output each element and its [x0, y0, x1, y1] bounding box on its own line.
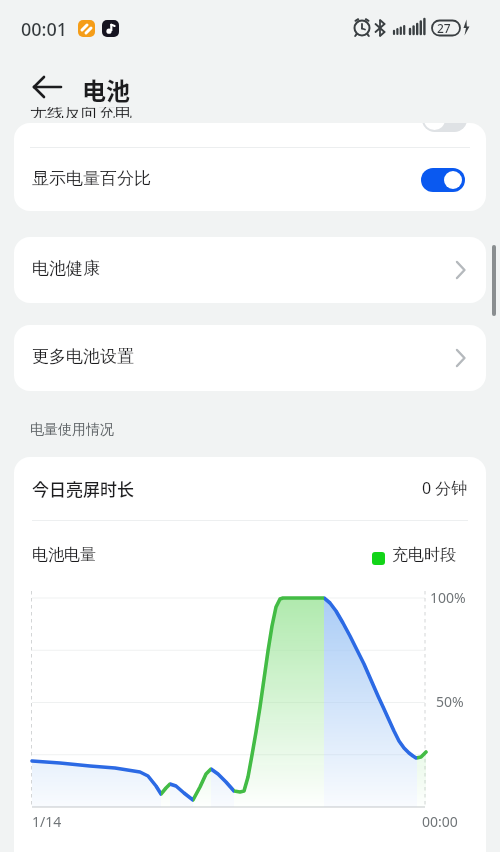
staticText: 电量使用情况 — [30, 421, 114, 439]
button[interactable]: 今日亮屏时长 — [14, 463, 486, 513]
button[interactable]: 显示电量百分比 — [14, 148, 486, 211]
staticText: 27 — [437, 20, 451, 36]
staticText: 电池电量 — [32, 545, 96, 565]
staticText: 今日亮屏时长 — [32, 476, 134, 501]
button[interactable]: 更多电池设置 — [14, 325, 486, 391]
staticText: 更多电池设置 — [32, 346, 134, 367]
button[interactable] — [24, 72, 68, 106]
button[interactable]: 电池健康 — [14, 237, 486, 303]
staticText: 100% — [430, 588, 466, 607]
staticText: 电池 — [82, 72, 130, 107]
staticText: 00:01 — [21, 17, 68, 42]
staticText: 50% — [436, 692, 464, 711]
staticText: 00:00 — [422, 812, 458, 831]
staticText: 显示电量百分比 — [32, 168, 151, 189]
button[interactable] — [421, 168, 465, 192]
staticText: 充电时段 — [392, 545, 456, 565]
staticText: 电池健康 — [32, 258, 100, 279]
staticText: 1/14 — [32, 812, 62, 831]
staticText: 0 分钟 — [422, 477, 468, 499]
staticText: 无线反向充电 — [30, 107, 132, 118]
